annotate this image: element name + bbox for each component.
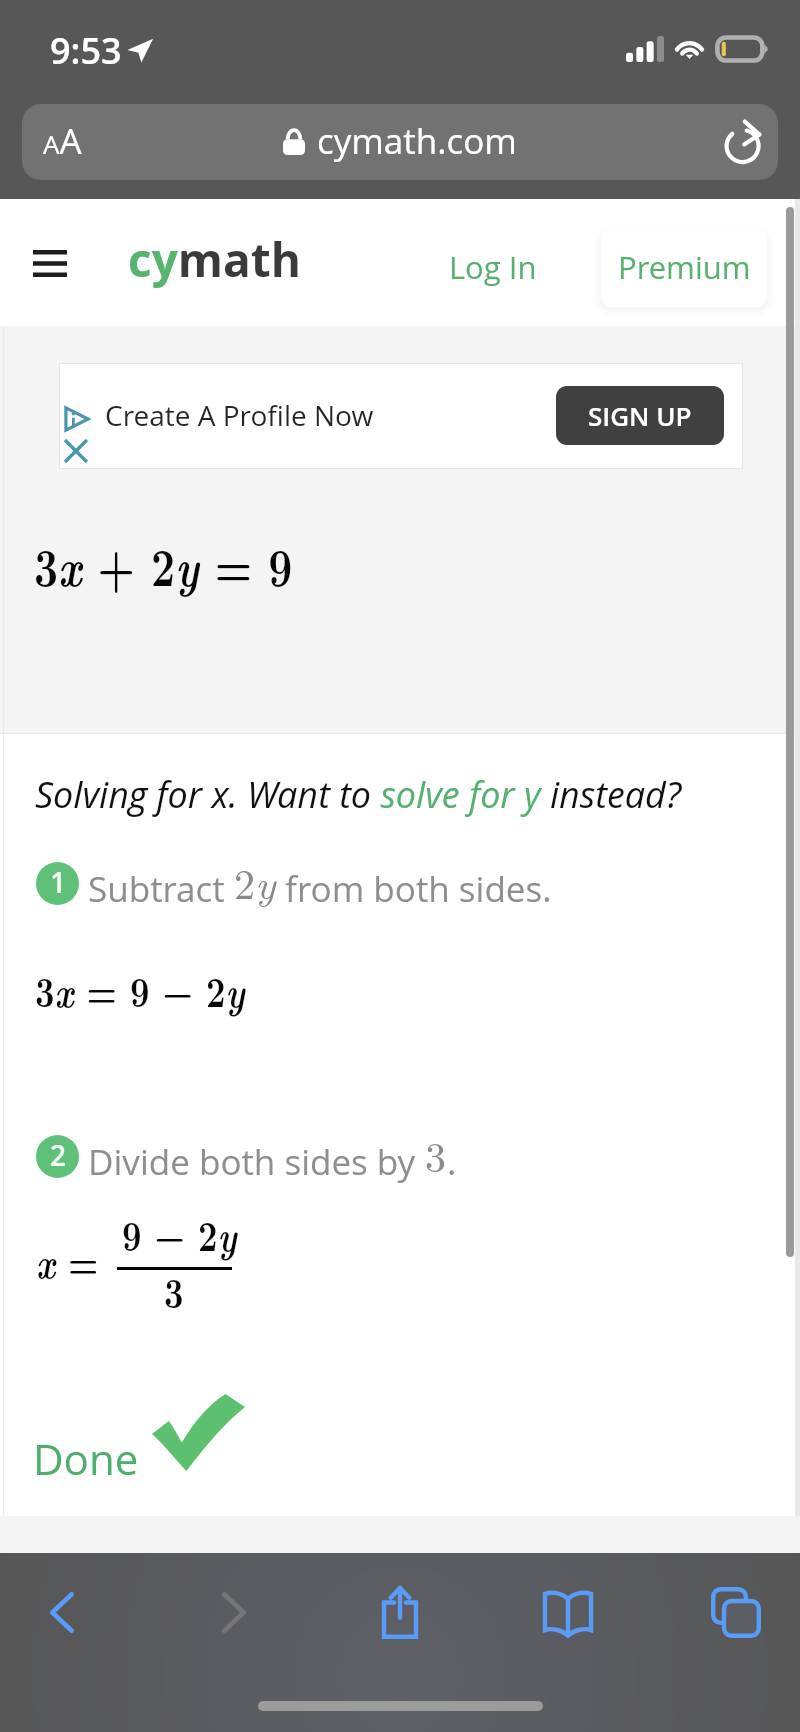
staticText: 3x + 2y = 9 xyxy=(34,525,292,602)
staticText: Create A Profile Now xyxy=(105,396,374,434)
staticText: cymath.com xyxy=(317,117,517,165)
button[interactable]: Premium xyxy=(601,229,767,307)
button[interactable]: Tabs xyxy=(694,1570,778,1654)
staticText: 3 xyxy=(164,1259,184,1320)
button[interactable]: Reload xyxy=(726,120,762,162)
staticText: 1 xyxy=(50,863,66,901)
button[interactable]: AA xyxy=(22,104,778,180)
staticText: Subtract xyxy=(88,865,234,913)
button[interactable]: SIGN UP xyxy=(556,386,724,445)
button[interactable]: Share xyxy=(358,1570,442,1654)
staticText: SIGN UP xyxy=(588,398,692,433)
staticText: from both sides. xyxy=(276,865,552,913)
staticText: 3 xyxy=(425,1125,447,1185)
button[interactable]: cymath xyxy=(128,228,301,291)
button[interactable]: Menu xyxy=(22,235,78,291)
staticText: 9 − 2y xyxy=(122,1202,237,1265)
button[interactable]: Log In xyxy=(436,229,550,299)
staticText: 2 xyxy=(50,1136,66,1174)
staticText: Divide both sides by xyxy=(88,1138,425,1186)
staticText: x = xyxy=(36,1229,99,1292)
button[interactable]: Done xyxy=(33,1430,139,1487)
button[interactable]: Bookmarks xyxy=(526,1572,610,1656)
button[interactable]: Forward xyxy=(192,1570,276,1654)
staticText: 9:53 xyxy=(50,26,122,75)
staticText: Solving for x. Want to solve for y inste… xyxy=(35,770,682,819)
staticText: Premium xyxy=(618,246,751,288)
button[interactable]: Back xyxy=(20,1570,104,1654)
staticText: 3x = 9 − 2y xyxy=(35,958,245,1021)
staticText: Log In xyxy=(449,246,537,288)
staticText: AA xyxy=(43,117,82,165)
staticText: . xyxy=(447,1138,457,1186)
staticText: 2y xyxy=(234,852,276,912)
